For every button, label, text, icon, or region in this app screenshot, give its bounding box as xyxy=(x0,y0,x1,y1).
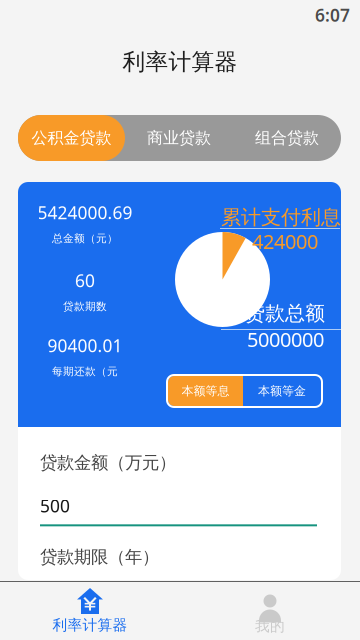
staticText: 5000000 xyxy=(247,326,324,353)
staticText: 500 xyxy=(40,494,70,517)
staticText: 本额等金 xyxy=(258,384,306,398)
button[interactable]: 本额等金 xyxy=(243,376,321,406)
staticText: 贷款期数 xyxy=(63,300,107,313)
staticText: 贷款期限（年） xyxy=(40,546,159,568)
staticText: 424000 xyxy=(252,228,318,255)
staticText: 每期还款（元 xyxy=(52,365,118,378)
staticText: 利率计算器 xyxy=(122,48,237,76)
button[interactable]: 本额等息 xyxy=(168,376,243,406)
button[interactable]: 商业贷款 xyxy=(125,115,233,161)
button[interactable]: 我的 xyxy=(180,582,360,640)
button[interactable]: 公积金贷款 xyxy=(18,115,125,161)
staticText: 90400.01 xyxy=(47,334,122,357)
staticText: 总金额（元） xyxy=(52,232,118,245)
staticText: 我的 xyxy=(255,617,285,635)
staticText: 贷款金额（万元） xyxy=(40,452,176,473)
staticText: 6:07 xyxy=(315,3,350,26)
staticText: 利率计算器 xyxy=(52,616,127,634)
staticText: 本额等息 xyxy=(181,384,229,398)
staticText: 组合贷款 xyxy=(255,128,319,148)
staticText: 5424000.69 xyxy=(37,201,132,224)
staticText: 商业贷款 xyxy=(147,128,211,148)
button[interactable]: 利率计算器 xyxy=(0,582,180,640)
staticText: 5 xyxy=(40,580,50,603)
staticText: 60 xyxy=(75,269,95,292)
button[interactable]: 组合贷款 xyxy=(233,115,341,161)
staticText: 累计支付利息 xyxy=(221,205,341,230)
staticText: 公积金贷款 xyxy=(31,128,111,148)
staticText: 贷款总额 xyxy=(245,301,325,326)
